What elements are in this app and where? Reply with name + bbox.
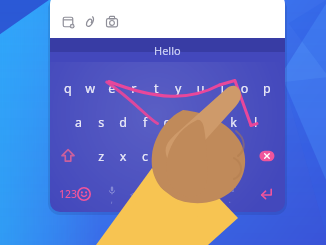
button[interactable]: Shift <box>55 148 75 164</box>
button[interactable]: Suggestion Hello <box>50 38 285 62</box>
button[interactable]: Emoji <box>80 186 98 202</box>
button[interactable]: Enter <box>262 186 284 204</box>
button[interactable]: Sticker <box>60 12 80 32</box>
button[interactable]: Backspace <box>255 148 279 164</box>
button[interactable]: Numbers <box>55 186 79 202</box>
button[interactable]: Camera <box>104 12 124 32</box>
button[interactable]: Attach <box>82 12 102 32</box>
button[interactable]: Voice input <box>105 184 123 202</box>
